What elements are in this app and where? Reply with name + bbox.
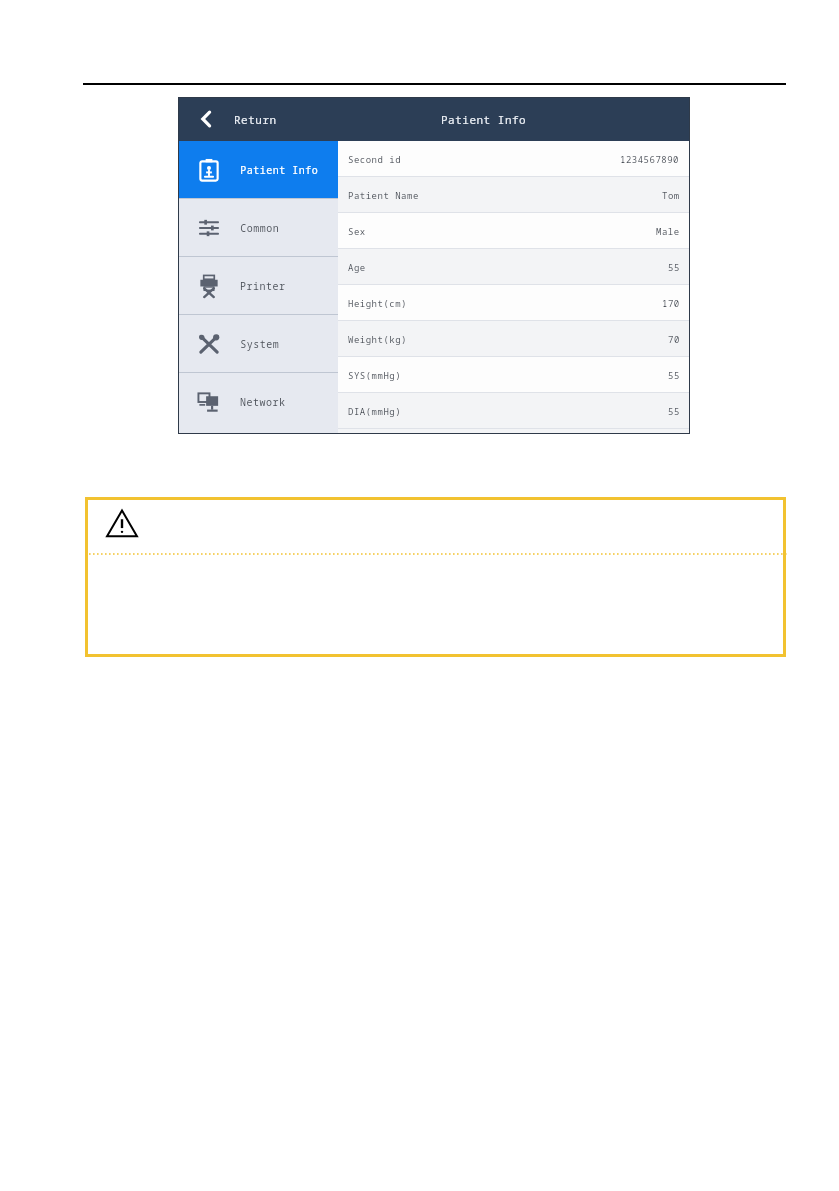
staticText: 55	[668, 405, 680, 417]
staticText: DIA(mmHg)	[348, 405, 668, 417]
staticText: Weight(kg)	[348, 333, 668, 345]
staticText: 55	[668, 369, 680, 381]
staticText: Second id	[348, 153, 620, 165]
staticText: Return	[234, 112, 277, 127]
button[interactable]: Sex	[348, 213, 680, 248]
button[interactable]: Common	[178, 199, 338, 256]
button[interactable]: Return	[234, 97, 338, 141]
button[interactable]: Printer	[178, 257, 338, 314]
staticText: Height(cm)	[348, 297, 662, 309]
staticText: Male	[656, 225, 680, 237]
button[interactable]: Weight(kg)	[348, 321, 680, 356]
button[interactable]: Patient Name	[348, 177, 680, 212]
button[interactable]: Height(cm)	[348, 285, 680, 320]
staticText: Patient Name	[348, 189, 662, 201]
staticText: Sex	[348, 225, 656, 237]
button[interactable]: DIA(mmHg)	[348, 393, 680, 428]
staticText: 1234567890	[620, 153, 680, 165]
staticText: 70	[668, 333, 680, 345]
button[interactable]: Back	[178, 97, 234, 141]
button[interactable]: SYS(mmHg)	[348, 357, 680, 392]
staticText: Network	[240, 395, 286, 409]
button[interactable]: Age	[348, 249, 680, 284]
button[interactable]: Patient Info	[178, 141, 338, 198]
staticText: 170	[662, 297, 680, 309]
staticText: Printer	[240, 279, 286, 293]
staticText: Common	[240, 221, 279, 235]
button[interactable]: Second id	[348, 141, 680, 176]
staticText: Tom	[662, 189, 680, 201]
staticText: Patient Info	[441, 112, 527, 127]
staticText: System	[240, 337, 279, 351]
staticText: Patient Info	[240, 163, 318, 177]
staticText: 55	[668, 261, 680, 273]
staticText: Age	[348, 261, 668, 273]
staticText: SYS(mmHg)	[348, 369, 668, 381]
button[interactable]: System	[178, 315, 338, 372]
button[interactable]: Network	[178, 373, 338, 430]
